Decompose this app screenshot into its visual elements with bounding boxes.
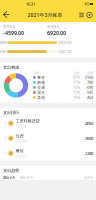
staticText: 10% [73,95,80,100]
staticText: 餐饮 [37,75,45,80]
staticText: 780 [87,80,93,85]
staticText: 占比 [74,71,80,75]
staticText: 支出趋势 [3,168,19,173]
staticText: 4800.00 [59,40,72,45]
button[interactable]: 最近七天 [3,175,15,180]
button[interactable]: 1 [0,116,96,131]
staticText: -1280 [84,150,93,156]
staticText: 16:21 [26,1,35,7]
button[interactable]: 3 [0,146,96,161]
staticText: 6920.00 [47,29,66,37]
staticText: 本月收入 [47,24,59,29]
staticText: 支出排行 [3,110,19,115]
staticText: 4G [85,2,89,6]
staticText: 最近30天 [20,175,33,180]
staticText: 近半年 [84,175,93,180]
staticText: 预算 [0,40,6,45]
staticText: 47% [73,75,80,80]
staticText: -4599.00 [3,29,24,37]
staticText: 居住 [37,90,45,95]
staticText: 2021年3月账单 [27,12,62,18]
staticText: 结余 [0,49,6,54]
staticText: 505 [87,90,93,95]
staticText: 3月5日 [16,124,26,128]
button[interactable]: 2 [0,131,96,146]
staticText: 2 [4,136,6,141]
staticText: 17% [73,80,80,85]
staticText: 690 [87,85,93,90]
staticText: 支出构成 [3,64,19,70]
button[interactable]: Settings [85,9,94,21]
button[interactable]: 近半年 [84,175,93,180]
staticText: 购物 [37,80,45,85]
staticText: 3月7日 [16,139,26,143]
staticText: 其他 [37,95,45,100]
staticText: 最近七天 [3,175,15,180]
staticText: 分类 [33,71,39,75]
button[interactable]: 最近30天 [20,175,33,180]
staticText: 2160 [85,75,93,80]
staticText: 餐饮 [16,148,24,153]
staticText: 工资转账还贷 [16,118,40,123]
staticText: 15% [73,85,80,90]
staticText: 交通 [37,85,45,90]
staticText: 金额 [87,71,93,75]
staticText: -4050 [84,120,93,126]
staticText: 464 [87,95,93,100]
button[interactable]: Back [0,9,12,21]
staticText: -3500 [84,135,93,141]
staticText: 住房 [16,133,24,138]
staticText: 2321.00 [59,49,72,54]
staticText: 本月支出 [3,24,15,29]
staticText: 3月1日 [16,154,26,158]
staticText: 1 [4,121,6,126]
button[interactable]: Bill list [78,9,85,21]
staticText: 3 [4,151,6,156]
staticText: 11% [73,90,80,95]
